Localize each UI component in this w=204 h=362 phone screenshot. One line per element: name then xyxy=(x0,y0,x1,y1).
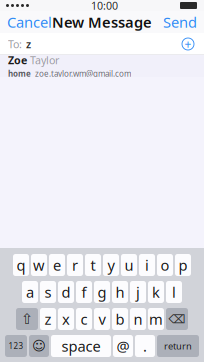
staticText: ⌫ xyxy=(168,312,185,326)
staticText: f xyxy=(81,282,86,302)
staticText: ⇧ xyxy=(21,311,33,327)
button[interactable]: h xyxy=(112,281,128,303)
button[interactable]: Delete xyxy=(166,308,188,330)
staticText: a xyxy=(26,282,34,302)
button[interactable]: n xyxy=(130,308,146,330)
staticText: p xyxy=(178,255,187,275)
button[interactable]: Shift xyxy=(16,308,38,330)
staticText: s xyxy=(44,282,51,302)
staticText: ☺ xyxy=(32,338,46,353)
button[interactable]: j xyxy=(130,281,146,303)
button[interactable]: e xyxy=(49,254,65,276)
staticText: q xyxy=(16,255,25,275)
staticText: r xyxy=(72,255,78,275)
staticText: To: xyxy=(8,37,22,51)
button[interactable]: u xyxy=(121,254,137,276)
button[interactable]: Emoji xyxy=(29,335,49,357)
staticText: + xyxy=(184,36,191,52)
staticText: Taylor xyxy=(27,53,59,67)
button[interactable]: @ xyxy=(113,335,133,357)
button[interactable]: space xyxy=(51,335,111,357)
staticText: n xyxy=(133,309,142,329)
staticText: . xyxy=(143,336,147,356)
button[interactable]: f xyxy=(76,281,92,303)
button[interactable]: o xyxy=(157,254,173,276)
button[interactable]: 123 xyxy=(5,335,27,357)
staticText: z xyxy=(26,37,31,51)
staticText: t xyxy=(90,255,95,275)
button[interactable]: g xyxy=(94,281,110,303)
staticText: New Message xyxy=(52,12,152,32)
staticText: g xyxy=(97,282,106,302)
button[interactable]: d xyxy=(58,281,74,303)
button[interactable]: s xyxy=(40,281,56,303)
button[interactable]: k xyxy=(148,281,164,303)
staticText: Send xyxy=(163,12,197,32)
staticText: Cancel xyxy=(7,12,52,32)
button[interactable]: x xyxy=(58,308,74,330)
button[interactable]: v xyxy=(94,308,110,330)
staticText: x xyxy=(62,309,70,329)
button[interactable]: Add contact xyxy=(178,34,198,54)
button[interactable]: Zoe xyxy=(0,55,204,77)
button[interactable]: l xyxy=(166,281,182,303)
staticText: Zoe xyxy=(8,53,27,67)
button[interactable]: . xyxy=(135,335,155,357)
button[interactable]: return xyxy=(157,335,199,357)
staticText: l xyxy=(172,282,176,302)
staticText: y xyxy=(107,255,114,275)
button[interactable]: i xyxy=(139,254,155,276)
button[interactable]: t xyxy=(85,254,101,276)
staticText: i xyxy=(145,255,149,275)
staticText: u xyxy=(124,255,133,275)
staticText: v xyxy=(98,309,105,329)
button[interactable]: a xyxy=(22,281,38,303)
button[interactable]: y xyxy=(103,254,119,276)
button[interactable]: w xyxy=(31,254,47,276)
button[interactable]: q xyxy=(13,254,29,276)
staticText: b xyxy=(115,309,124,329)
staticText: c xyxy=(80,309,87,329)
staticText: k xyxy=(152,282,160,302)
staticText: h xyxy=(115,282,124,302)
button[interactable]: Cancel xyxy=(0,11,59,33)
staticText: m xyxy=(149,309,163,329)
staticText: w xyxy=(33,255,45,275)
button[interactable]: r xyxy=(67,254,83,276)
staticText: d xyxy=(61,282,70,302)
staticText: o xyxy=(160,255,169,275)
button[interactable]: b xyxy=(112,308,128,330)
staticText: e xyxy=(53,255,61,275)
staticText: return xyxy=(164,340,192,352)
staticText: zoe.taylor.wm@gmail.com xyxy=(31,68,131,79)
button[interactable]: p xyxy=(175,254,191,276)
staticText: 10:00 xyxy=(91,0,118,13)
staticText: z xyxy=(44,309,51,329)
staticText: 123 xyxy=(8,341,23,351)
staticText: home xyxy=(8,68,31,79)
staticText: j xyxy=(136,282,140,302)
staticText: @ xyxy=(116,336,129,356)
staticText: space xyxy=(61,336,100,356)
button[interactable]: c xyxy=(76,308,92,330)
button[interactable]: m xyxy=(148,308,164,330)
button[interactable]: z xyxy=(40,308,56,330)
button[interactable]: Send xyxy=(156,11,204,33)
